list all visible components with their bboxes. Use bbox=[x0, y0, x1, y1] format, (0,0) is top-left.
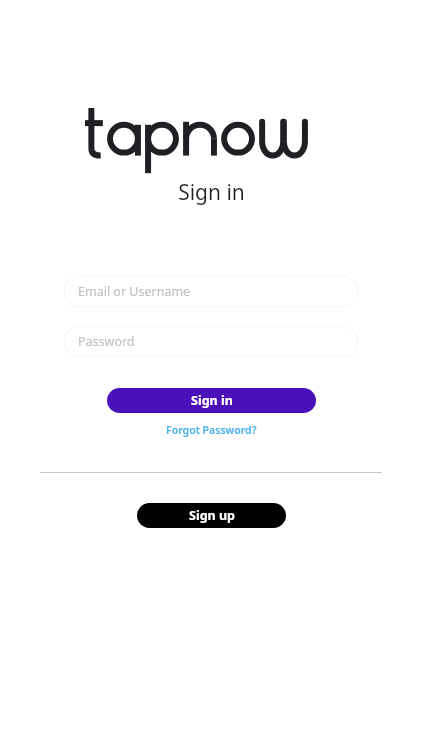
button[interactable]: Email or Username bbox=[64, 276, 358, 307]
staticText: Password bbox=[78, 333, 135, 350]
staticText: Email or Username bbox=[78, 283, 191, 300]
button[interactable]: Sign in bbox=[107, 388, 316, 413]
staticText: Sign up bbox=[189, 507, 235, 524]
staticText: Sign in bbox=[191, 392, 233, 409]
staticText: Forgot Password? bbox=[166, 423, 257, 437]
button[interactable]: Forgot Password? bbox=[162, 422, 261, 438]
staticText: Sign in bbox=[178, 178, 245, 207]
button[interactable]: Sign up bbox=[137, 503, 286, 528]
button[interactable]: Password bbox=[64, 326, 358, 357]
